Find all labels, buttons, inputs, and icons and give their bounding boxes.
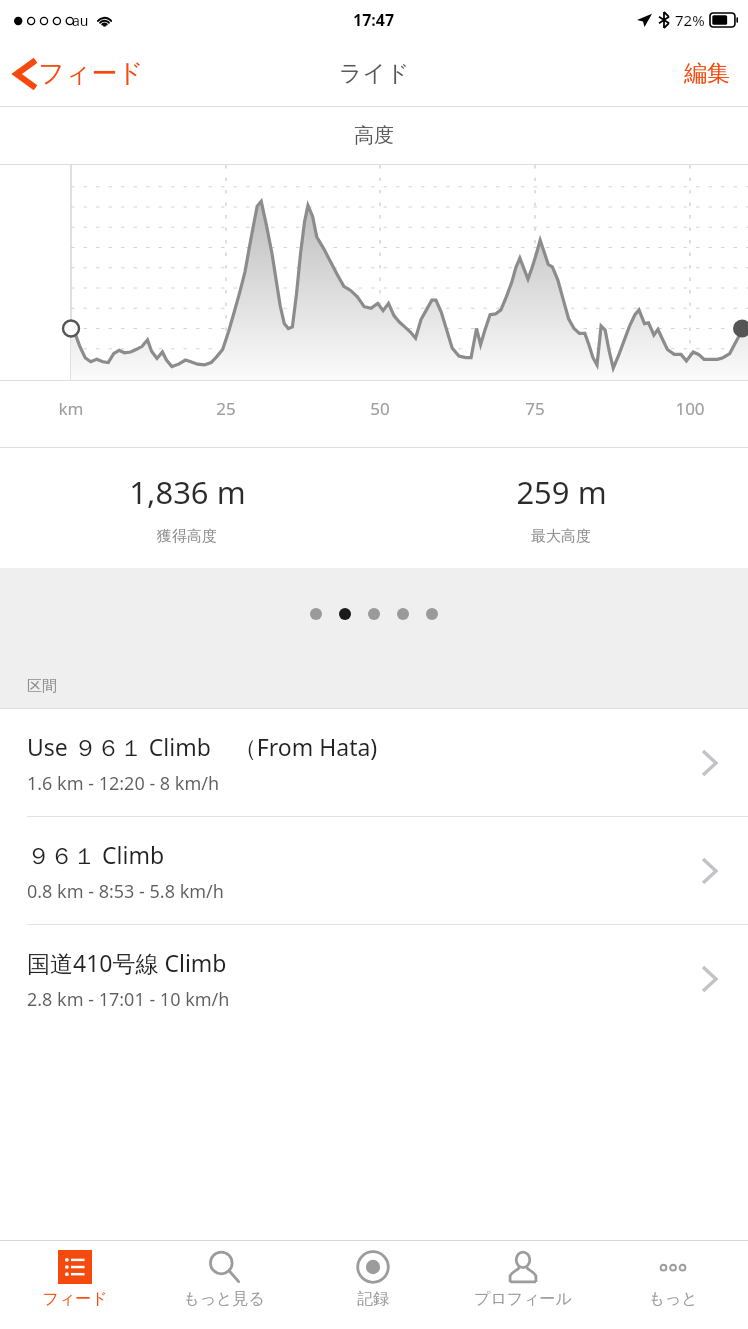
staticText: 100 — [650, 397, 730, 420]
staticText: プロフィール — [474, 1289, 572, 1309]
staticText: au — [72, 11, 89, 30]
button[interactable]: 国道410号線 Climb — [0, 925, 748, 1033]
button[interactable]: Explore — [149, 1241, 298, 1329]
button[interactable]: Feed — [0, 1241, 149, 1329]
staticText: 最大高度 — [531, 527, 591, 546]
staticText: km — [31, 397, 111, 420]
staticText: 編集 — [684, 59, 730, 88]
button[interactable]: Record — [298, 1241, 448, 1329]
staticText: ９６１ Climb — [27, 839, 165, 870]
staticText: ライド — [339, 59, 410, 88]
button[interactable]: More — [598, 1241, 748, 1329]
staticText: 0.8 km - 8:53 - 5.8 km/h — [27, 879, 224, 904]
staticText: 72% — [675, 10, 705, 30]
button[interactable]: Use ９６１ Climb （From Hata) — [0, 709, 748, 817]
staticText: 259 m — [516, 471, 607, 513]
staticText: 記録 — [357, 1289, 389, 1309]
staticText: もっと — [648, 1289, 698, 1309]
staticText: 区間 — [27, 677, 57, 696]
staticText: 1.6 km - 12:20 - 8 km/h — [27, 771, 220, 796]
staticText: 2.8 km - 17:01 - 10 km/h — [27, 987, 230, 1012]
staticText: Use ９６１ Climb （From Hata) — [27, 731, 378, 762]
staticText: もっと見る — [183, 1289, 265, 1309]
button[interactable]: ９６１ Climb — [0, 817, 748, 925]
staticText: 75 — [495, 397, 575, 420]
button[interactable]: 編集 — [666, 49, 748, 98]
staticText: 国道410号線 Climb — [27, 947, 227, 978]
staticText: 17:47 — [353, 9, 395, 31]
button[interactable]: フィード — [0, 49, 158, 98]
staticText: 50 — [340, 397, 420, 420]
staticText: 高度 — [354, 123, 394, 148]
staticText: フィード — [38, 57, 144, 90]
staticText: フィード — [42, 1289, 108, 1309]
staticText: 25 — [186, 397, 266, 420]
staticText: 獲得高度 — [157, 527, 217, 546]
staticText: 1,836 m — [129, 471, 246, 513]
button[interactable]: Profile — [448, 1241, 598, 1329]
